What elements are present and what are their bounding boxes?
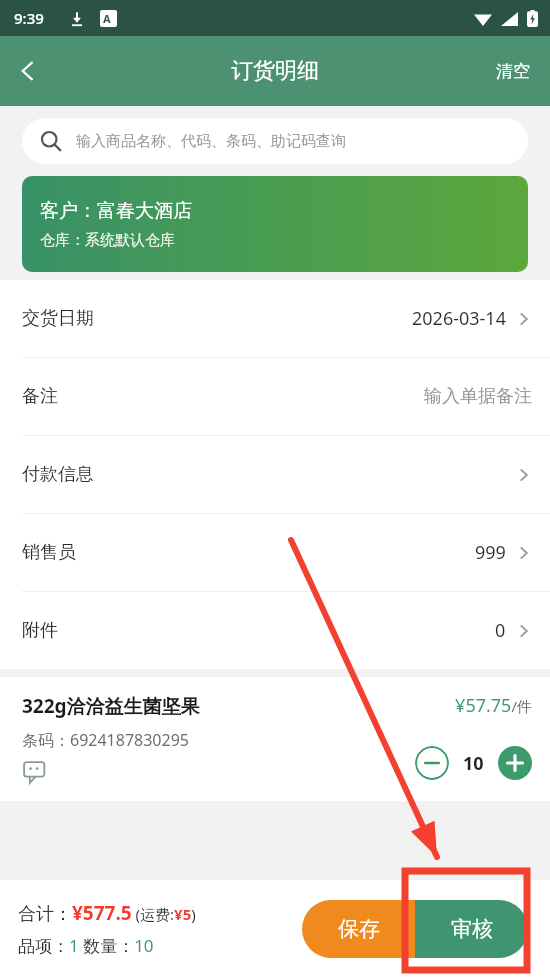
button[interactable]: 备注 [0, 358, 550, 436]
button[interactable]: Increase quantity [498, 746, 532, 780]
staticText: 合计：¥577.5 (运费:¥5) [18, 900, 196, 926]
staticText: 9:39 [14, 8, 44, 28]
staticText: 保存 [338, 916, 380, 942]
staticText: 客户：富春大酒店 [40, 199, 192, 223]
staticText: 备注 [22, 385, 58, 408]
staticText: 输入单据备注 [424, 385, 532, 408]
staticText: 销售员 [22, 541, 76, 564]
staticText: 订货明细 [231, 57, 319, 85]
staticText: 交货日期 [22, 307, 94, 330]
button[interactable]: 输入商品名称、代码、条码、助记码查询 [22, 118, 528, 164]
staticText: 付款信息 [22, 463, 94, 486]
button[interactable]: 322g洽洽益生菌坚果 [0, 677, 550, 801]
button[interactable]: Remark [22, 759, 48, 785]
staticText: 322g洽洽益生菌坚果 [22, 693, 200, 719]
staticText: 10 [463, 751, 484, 776]
staticText: 999 [475, 540, 506, 565]
staticText: 品项：1 数量：10 [18, 934, 154, 957]
button[interactable]: 交货日期 [0, 280, 550, 358]
button[interactable]: 清空 [482, 51, 544, 92]
button[interactable]: 审核 [415, 900, 528, 958]
staticText: 仓库：系统默认仓库 [40, 231, 175, 250]
staticText: 清空 [496, 61, 530, 82]
button[interactable]: Back [0, 43, 56, 99]
staticText: 2026-03-14 [412, 306, 506, 331]
button[interactable]: 付款信息 [0, 436, 550, 514]
staticText: 输入商品名称、代码、条码、助记码查询 [76, 132, 346, 151]
button[interactable]: Decrease quantity [415, 746, 449, 780]
staticText: 条码：6924187830295 [22, 729, 189, 751]
staticText: 审核 [451, 916, 493, 942]
staticText: ¥57.75/件 [455, 693, 532, 718]
staticText: A [103, 11, 111, 26]
button[interactable]: 客户：富春大酒店 [22, 176, 528, 272]
button[interactable]: 销售员 [0, 514, 550, 592]
staticText: 附件 [22, 619, 58, 642]
button[interactable]: 保存 [302, 900, 415, 958]
staticText: 0 [495, 618, 506, 643]
button[interactable]: 附件 [0, 592, 550, 669]
